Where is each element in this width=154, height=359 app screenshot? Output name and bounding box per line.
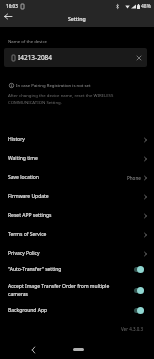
button[interactable]: Back [27, 344, 39, 356]
staticText: Reset APP settings [8, 212, 52, 219]
staticText: History [8, 136, 25, 143]
staticText: 16:03 [6, 3, 18, 9]
button[interactable]: Save location [0, 168, 154, 187]
button[interactable]: "Auto-Transfer" setting [0, 260, 154, 279]
staticText: I4213-2084 [18, 53, 53, 62]
staticText: Phone [127, 175, 141, 181]
staticText: "Auto-Transfer" setting [8, 266, 129, 273]
staticText: Ver 4.3.0.3 [121, 326, 144, 332]
staticText: In case Pairing Registration is not set [16, 82, 91, 88]
button[interactable]: Back [0, 8, 16, 24]
button[interactable]: Waiting time [0, 149, 154, 168]
staticText: Save location [8, 174, 39, 181]
staticText: Waiting time [8, 155, 38, 162]
button[interactable]: Reset APP settings [0, 206, 154, 225]
staticText: Name of the device [8, 38, 47, 44]
staticText: 48% [141, 3, 151, 10]
button[interactable]: I4213-2084 [4, 48, 147, 67]
staticText: Privacy Policy [8, 250, 40, 257]
button[interactable]: Clear name [134, 53, 143, 62]
button[interactable]: Home [73, 348, 84, 351]
button[interactable]: Accept Image Transfer Order from multipl… [0, 279, 154, 301]
staticText: Setting [68, 15, 86, 22]
staticText: Terms of Service [8, 231, 47, 238]
staticText: Firmware Update [8, 193, 49, 200]
button[interactable]: Privacy Policy [0, 244, 154, 263]
button[interactable]: History [0, 130, 154, 149]
staticText: Accept Image Transfer Order from multipl… [8, 283, 129, 298]
button[interactable]: Firmware Update [0, 187, 154, 206]
button[interactable]: Terms of Service [0, 225, 154, 244]
staticText: Background App [8, 307, 129, 314]
staticText: After changing the device name, reset th… [8, 92, 114, 105]
button[interactable]: Background App [0, 301, 154, 320]
